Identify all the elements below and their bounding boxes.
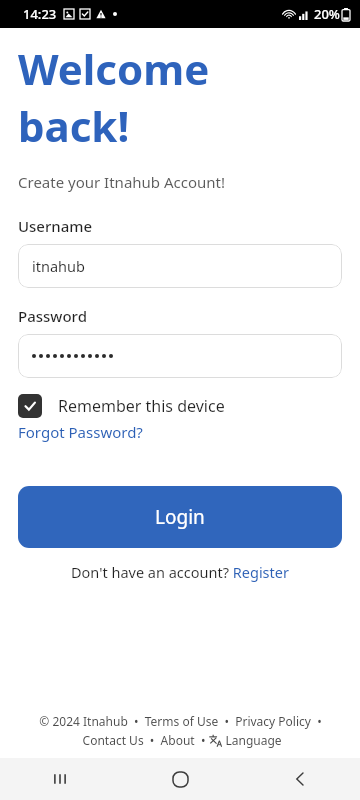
staticText: back!	[18, 97, 130, 154]
staticText: Forgot Password?	[18, 422, 143, 442]
button[interactable]	[18, 334, 342, 378]
button[interactable]: Remember this device	[18, 394, 225, 418]
button[interactable]: Login	[18, 486, 342, 548]
staticText: Create your Itnahub Account!	[18, 172, 226, 192]
button[interactable]: Contact Us • About •	[79, 732, 209, 748]
button[interactable]: Home	[120, 758, 240, 800]
staticText: itnahub	[32, 256, 85, 276]
button[interactable]: itnahub	[18, 244, 342, 288]
button[interactable]: Language	[225, 732, 282, 748]
staticText: Welcome	[18, 40, 210, 97]
button[interactable]: Back	[240, 758, 360, 800]
staticText: Remember this device	[58, 395, 225, 417]
staticText: Password	[18, 306, 87, 326]
staticText: 14:23	[23, 5, 57, 23]
staticText: 20%	[314, 5, 340, 23]
button[interactable]: Recent apps	[0, 758, 120, 800]
button[interactable]: Forgot Password?	[18, 422, 143, 442]
staticText: Username	[18, 216, 93, 236]
staticText: Login	[155, 504, 205, 530]
button[interactable]: Don't have an account? Register	[71, 562, 289, 582]
button[interactable]: © 2024 Itnahub • Terms of Use • Privacy …	[39, 713, 322, 729]
other: Language	[209, 734, 222, 747]
